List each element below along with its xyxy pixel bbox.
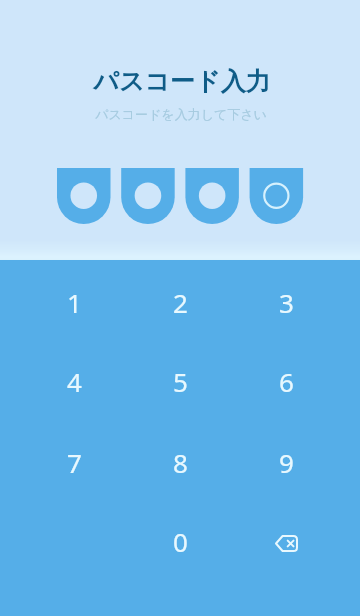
button[interactable]: 5: [132, 343, 228, 419]
staticText: 5: [173, 364, 188, 399]
button[interactable]: 2: [132, 264, 228, 340]
button[interactable]: 3: [238, 264, 334, 340]
button[interactable]: 7: [26, 424, 122, 500]
staticText: 7: [67, 445, 82, 480]
button[interactable]: 8: [132, 424, 228, 500]
staticText: 4: [67, 364, 82, 399]
staticText: 8: [173, 445, 188, 480]
staticText: パスコード入力: [93, 66, 271, 97]
button[interactable]: 9: [238, 424, 334, 500]
staticText: 0: [173, 524, 188, 559]
button[interactable]: 6: [238, 343, 334, 419]
staticText: パスコードを入力して下さい: [95, 106, 267, 122]
button[interactable]: Backspace: [238, 503, 334, 579]
button[interactable]: 1: [26, 264, 122, 340]
staticText: 9: [279, 445, 294, 480]
staticText: 3: [279, 285, 294, 320]
button[interactable]: 4: [26, 343, 122, 419]
button[interactable]: 0: [132, 503, 228, 579]
staticText: 2: [173, 285, 188, 320]
staticText: 6: [279, 364, 294, 399]
staticText: 1: [67, 285, 82, 320]
